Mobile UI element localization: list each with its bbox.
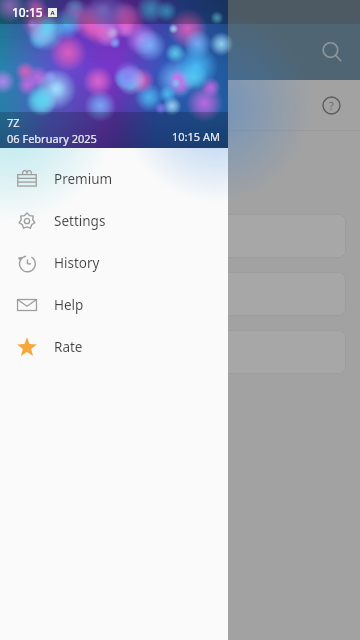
button[interactable]: Rate: [0, 326, 228, 368]
staticText: Rate: [54, 338, 83, 356]
staticText: Settings: [54, 212, 106, 230]
staticText: ?: [329, 98, 334, 113]
button[interactable]: Settings: [0, 200, 228, 242]
staticText: History: [54, 254, 100, 272]
staticText: 10:15: [12, 4, 43, 20]
staticText: Help: [54, 296, 84, 314]
button[interactable]: Videos: [16, 330, 346, 374]
button[interactable]: Help: [0, 284, 228, 326]
staticText: A: [50, 9, 55, 17]
staticText: Files: [82, 227, 110, 245]
staticText: 7Z: [7, 115, 20, 130]
button[interactable]: Files: [16, 214, 346, 258]
button[interactable]: Premium: [0, 158, 228, 200]
button[interactable]: Images: [16, 272, 346, 316]
staticText: 10:15 AM: [172, 129, 220, 144]
staticText: 06 February 2025: [7, 131, 97, 146]
button[interactable]: Search: [312, 32, 352, 72]
button[interactable]: History: [0, 242, 228, 284]
button[interactable]: Help: [316, 90, 346, 120]
staticText: Premium: [54, 170, 113, 188]
